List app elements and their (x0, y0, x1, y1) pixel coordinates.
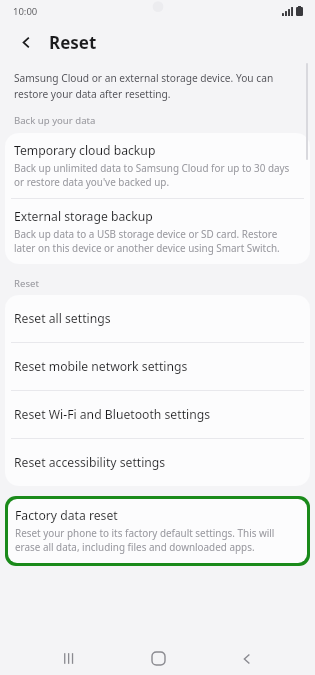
staticText: Reset (14, 277, 39, 290)
button[interactable]: Reset all settings (5, 295, 310, 342)
staticText: Reset your phone to its factory default … (15, 526, 293, 554)
staticText: Reset Wi-Fi and Bluetooth settings (14, 406, 211, 423)
staticText: Back up unlimited data to Samsung Cloud … (14, 161, 294, 189)
button[interactable]: Reset mobile network settings (5, 343, 310, 390)
staticText: 10:00 (13, 5, 38, 18)
button[interactable]: External storage backup (5, 199, 310, 264)
staticText: External storage backup (14, 208, 153, 225)
staticText: Reset accessibility settings (14, 454, 166, 471)
staticText: Back up your data (14, 114, 96, 127)
button[interactable]: Temporary cloud backup (5, 133, 310, 198)
button[interactable]: Reset accessibility settings (5, 439, 310, 486)
staticText: Reset all settings (14, 310, 111, 327)
staticText: Reset (49, 31, 97, 54)
staticText: Temporary cloud backup (14, 142, 156, 159)
staticText: Factory data reset (15, 507, 118, 524)
button[interactable]: Factory data reset (5, 496, 310, 566)
button[interactable]: Recent apps (46, 642, 90, 675)
staticText: Samsung Cloud or an external storage dev… (14, 71, 293, 101)
button[interactable]: Home (136, 642, 180, 675)
staticText: Reset mobile network settings (14, 358, 188, 375)
button[interactable]: Back (13, 29, 39, 55)
button[interactable]: Back (225, 642, 269, 675)
button[interactable]: Reset Wi-Fi and Bluetooth settings (5, 391, 310, 438)
staticText: Back up data to a USB storage device or … (14, 227, 294, 255)
